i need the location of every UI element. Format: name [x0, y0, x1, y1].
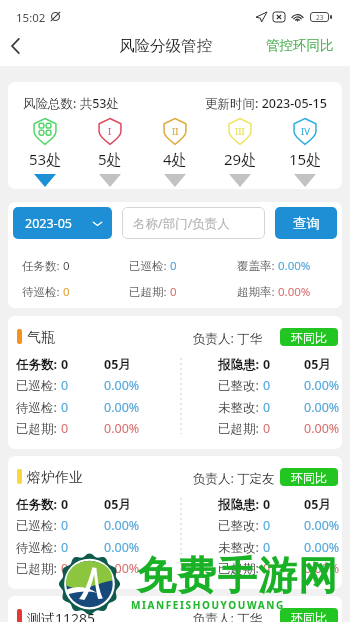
staticText: 管控环同比 — [266, 37, 334, 54]
button[interactable]: II — [145, 118, 205, 189]
staticText: 已整改: — [218, 377, 263, 394]
staticText: 待巡检: — [22, 284, 63, 300]
staticText: 0.00% — [304, 517, 340, 534]
button[interactable]: 熔炉作业 — [8, 456, 342, 589]
staticText: 15处 — [289, 149, 322, 169]
staticText: 名称/部门/负责人 — [133, 215, 230, 232]
staticText: 0.00% — [304, 539, 340, 556]
staticText: 0 — [61, 560, 69, 577]
staticText: 0 — [61, 517, 69, 534]
staticText: 已超期: — [218, 560, 263, 577]
staticText: 0.00% — [104, 517, 140, 534]
button[interactable]: 环同比 — [280, 468, 338, 486]
staticText: 0 — [170, 284, 177, 300]
staticText: 已巡检: — [16, 517, 61, 534]
staticText: 已超期: — [16, 560, 61, 577]
staticText: MIANFEISHOUYOUWANG — [131, 598, 285, 612]
staticText: 未整改: — [218, 539, 263, 556]
button[interactable]: Back — [0, 30, 32, 62]
button[interactable]: 53处 — [15, 118, 75, 189]
staticText: 0.00% — [278, 284, 311, 300]
staticText: 05月 — [304, 356, 331, 373]
staticText: 0 — [263, 539, 271, 556]
staticText: 05月 — [104, 356, 131, 373]
staticText: 免费手游网 — [136, 551, 338, 600]
staticText: 环同比 — [291, 470, 327, 485]
staticText: 0 — [61, 420, 69, 437]
button[interactable]: 气瓶 — [8, 316, 342, 449]
staticText: 15:02 — [16, 10, 46, 26]
staticText: 0.00% — [104, 420, 140, 437]
staticText: 0.00% — [304, 399, 340, 416]
staticText: 已整改: — [218, 517, 263, 534]
staticText: 0 — [263, 496, 271, 513]
staticText: 测试11285 — [27, 609, 96, 622]
staticText: 待巡检: — [16, 399, 61, 416]
staticText: 负责人: 丁华 — [193, 330, 263, 347]
staticText: 05月 — [304, 496, 331, 513]
staticText: 环同比 — [291, 330, 327, 345]
button[interactable]: 名称/部门/负责人 — [122, 207, 265, 239]
staticText: 待巡检: — [16, 539, 61, 556]
button[interactable]: 管控环同比 — [258, 32, 342, 59]
staticText: 负责人: 丁华 — [193, 610, 263, 622]
staticText: 0 — [61, 377, 69, 394]
button[interactable]: I — [80, 118, 140, 189]
staticText: 报隐患: — [218, 356, 263, 373]
staticText: 23 — [316, 13, 324, 22]
staticText: 0 — [61, 496, 69, 513]
staticText: 0 — [263, 356, 271, 373]
button[interactable]: 2023-05 — [13, 207, 112, 239]
staticText: 0.00% — [278, 258, 311, 274]
staticText: 0 — [263, 399, 271, 416]
staticText: 环同比 — [291, 610, 327, 622]
staticText: 超期率: — [237, 284, 278, 300]
staticText: 已超期: — [16, 420, 61, 437]
staticText: 0.00% — [104, 560, 140, 577]
button[interactable]: 环同比 — [280, 608, 338, 622]
staticText: 5处 — [98, 149, 122, 169]
staticText: 报隐患: — [218, 496, 263, 513]
staticText: 0 — [61, 356, 69, 373]
staticText: 气瓶 — [27, 329, 55, 347]
staticText: 未整改: — [218, 399, 263, 416]
staticText: 熔炉作业 — [27, 469, 83, 487]
staticText: 0 — [61, 539, 69, 556]
button[interactable]: 环同比 — [280, 328, 338, 346]
staticText: 0 — [63, 258, 70, 274]
staticText: III — [235, 125, 245, 138]
staticText: 风险分级管控 — [119, 36, 212, 56]
staticText: 53处 — [29, 149, 62, 169]
button[interactable]: IV — [275, 118, 335, 189]
staticText: 任务数: — [22, 258, 63, 274]
staticText: 查询 — [293, 215, 320, 232]
staticText: 0 — [263, 560, 271, 577]
staticText: 0.00% — [304, 560, 340, 577]
staticText: 0 — [263, 420, 271, 437]
staticText: 风险总数: 共53处 — [23, 95, 119, 112]
staticText: II — [172, 125, 179, 138]
staticText: 任务数: — [16, 496, 61, 513]
staticText: 0 — [63, 284, 70, 300]
button[interactable]: III — [210, 118, 270, 189]
staticText: I — [108, 125, 112, 138]
staticText: IV — [301, 125, 310, 138]
staticText: 已超期: — [129, 284, 170, 300]
button[interactable]: 查询 — [275, 207, 337, 239]
staticText: 0 — [263, 377, 271, 394]
staticText: 0.00% — [304, 377, 340, 394]
staticText: 已超期: — [218, 420, 263, 437]
staticText: 4处 — [163, 149, 187, 169]
button[interactable]: 测试11285 — [8, 596, 342, 622]
staticText: 负责人: 丁定友 — [193, 470, 275, 487]
staticText: 已巡检: — [129, 258, 170, 274]
staticText: 更新时间: 2023-05-15 — [205, 95, 327, 112]
staticText: 任务数: — [16, 356, 61, 373]
staticText: 0 — [170, 258, 177, 274]
staticText: 0.00% — [104, 377, 140, 394]
staticText: 05月 — [104, 496, 131, 513]
staticText: 0.00% — [104, 539, 140, 556]
staticText: 覆盖率: — [237, 258, 278, 274]
staticText: 0.00% — [104, 399, 140, 416]
staticText: 0.00% — [304, 420, 340, 437]
